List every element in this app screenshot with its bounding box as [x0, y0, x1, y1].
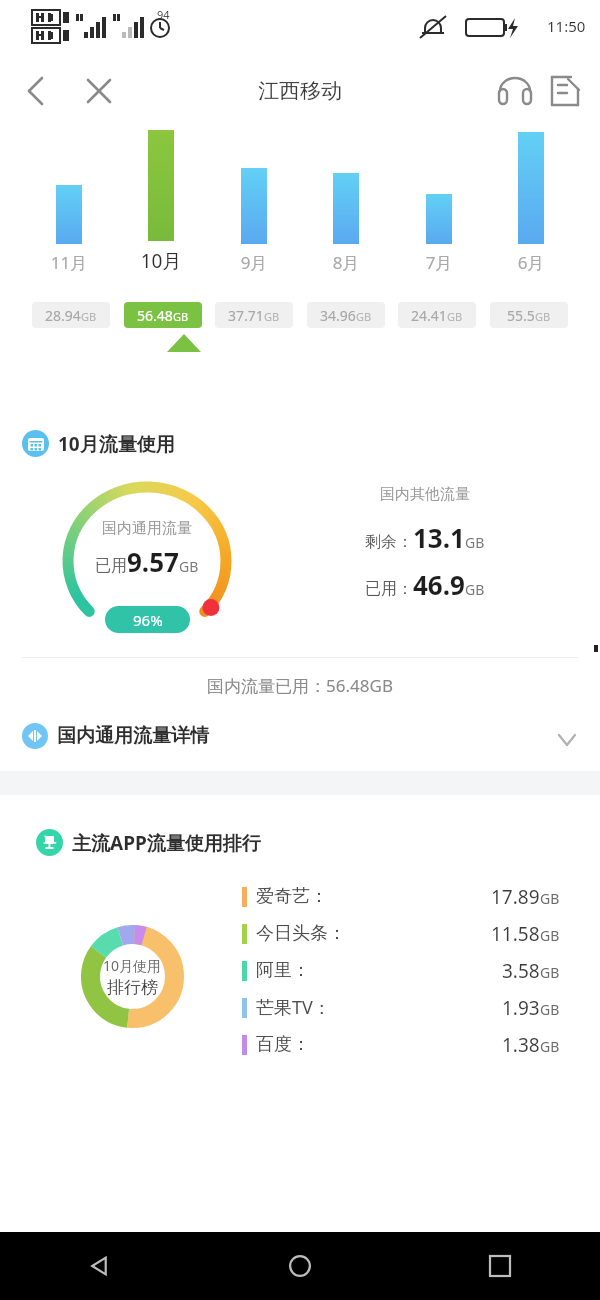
button[interactable]: 主流APP流量使用排行: [22, 813, 578, 1097]
staticText: 8月: [311, 251, 381, 274]
staticText: 6月: [496, 251, 566, 274]
button[interactable]: 37.71: [215, 302, 293, 328]
staticText: GB: [356, 309, 372, 324]
staticText: 1.38: [502, 1032, 540, 1058]
button[interactable]: 96%: [105, 606, 190, 633]
staticText: GB: [179, 557, 199, 576]
button[interactable]: 国内通用流量详情: [0, 711, 600, 761]
staticText: 国内其他流量: [380, 485, 470, 504]
button[interactable]: Customer service: [492, 68, 538, 114]
staticText: 国内流量已用：56.48GB: [22, 674, 578, 697]
staticText: 爱奇艺：: [256, 885, 328, 908]
button[interactable]: Recent apps: [400, 1232, 600, 1300]
staticText: GB: [465, 533, 485, 552]
staticText: GB: [81, 309, 97, 324]
staticText: 3.58: [502, 958, 540, 984]
staticText: 17.89: [491, 884, 540, 910]
staticText: 已用: [95, 556, 127, 576]
staticText: 24.41: [411, 306, 447, 325]
staticText: 28.94: [45, 306, 81, 325]
staticText: 阿里：: [256, 959, 310, 982]
staticText: GB: [264, 309, 280, 324]
staticText: 10月使用: [103, 956, 162, 975]
staticText: 排行榜: [107, 977, 158, 998]
button[interactable]: Close: [76, 68, 122, 114]
staticText: GB: [535, 309, 551, 324]
button[interactable]: 10月流量使用: [22, 430, 578, 457]
button[interactable]: Notes: [542, 68, 588, 114]
staticText: 芒果TV：: [256, 995, 331, 1020]
staticText: 11.58: [491, 921, 540, 947]
button[interactable]: Home: [200, 1232, 400, 1300]
staticText: 56.48: [137, 306, 173, 325]
button[interactable]: 55.5: [490, 302, 568, 328]
staticText: 13.1: [413, 520, 465, 555]
staticText: GB: [465, 580, 485, 599]
staticText: 10月: [126, 248, 196, 274]
staticText: 百度：: [256, 1033, 310, 1056]
staticText: 46.9: [413, 567, 465, 602]
staticText: 37.71: [228, 306, 264, 325]
staticText: GB: [540, 926, 560, 945]
staticText: 10月流量使用: [58, 431, 175, 457]
staticText: 96%: [133, 610, 163, 630]
staticText: GB: [540, 963, 560, 982]
button[interactable]: 56.48: [124, 302, 202, 328]
button[interactable]: 34.96: [307, 302, 385, 328]
staticText: 主流APP流量使用排行: [72, 830, 261, 856]
staticText: GB: [540, 889, 560, 908]
staticText: 9月: [219, 251, 289, 274]
staticText: 国内通用流量: [102, 519, 192, 538]
staticText: 国内通用流量详情: [57, 724, 209, 748]
staticText: 11月: [34, 251, 104, 274]
staticText: 7月: [404, 251, 474, 274]
staticText: 已用：: [365, 579, 413, 599]
staticText: 江西移动: [258, 78, 342, 104]
staticText: 9.57: [127, 544, 179, 579]
staticText: GB: [447, 309, 463, 324]
staticText: 1.93: [502, 995, 540, 1021]
staticText: 55.5: [507, 306, 535, 325]
button[interactable]: Back: [0, 1232, 200, 1300]
button[interactable]: 24.41: [398, 302, 476, 328]
button[interactable]: Back: [12, 68, 58, 114]
staticText: 11:50: [547, 16, 586, 36]
staticText: 94: [157, 7, 170, 22]
button[interactable]: 11月: [22, 130, 578, 412]
button[interactable]: 28.94: [32, 302, 110, 328]
staticText: 剩余：: [365, 532, 413, 552]
staticText: GB: [173, 309, 189, 324]
staticText: GB: [540, 1000, 560, 1019]
staticText: 今日头条：: [256, 922, 346, 945]
staticText: GB: [540, 1037, 560, 1056]
staticText: 34.96: [320, 306, 356, 325]
